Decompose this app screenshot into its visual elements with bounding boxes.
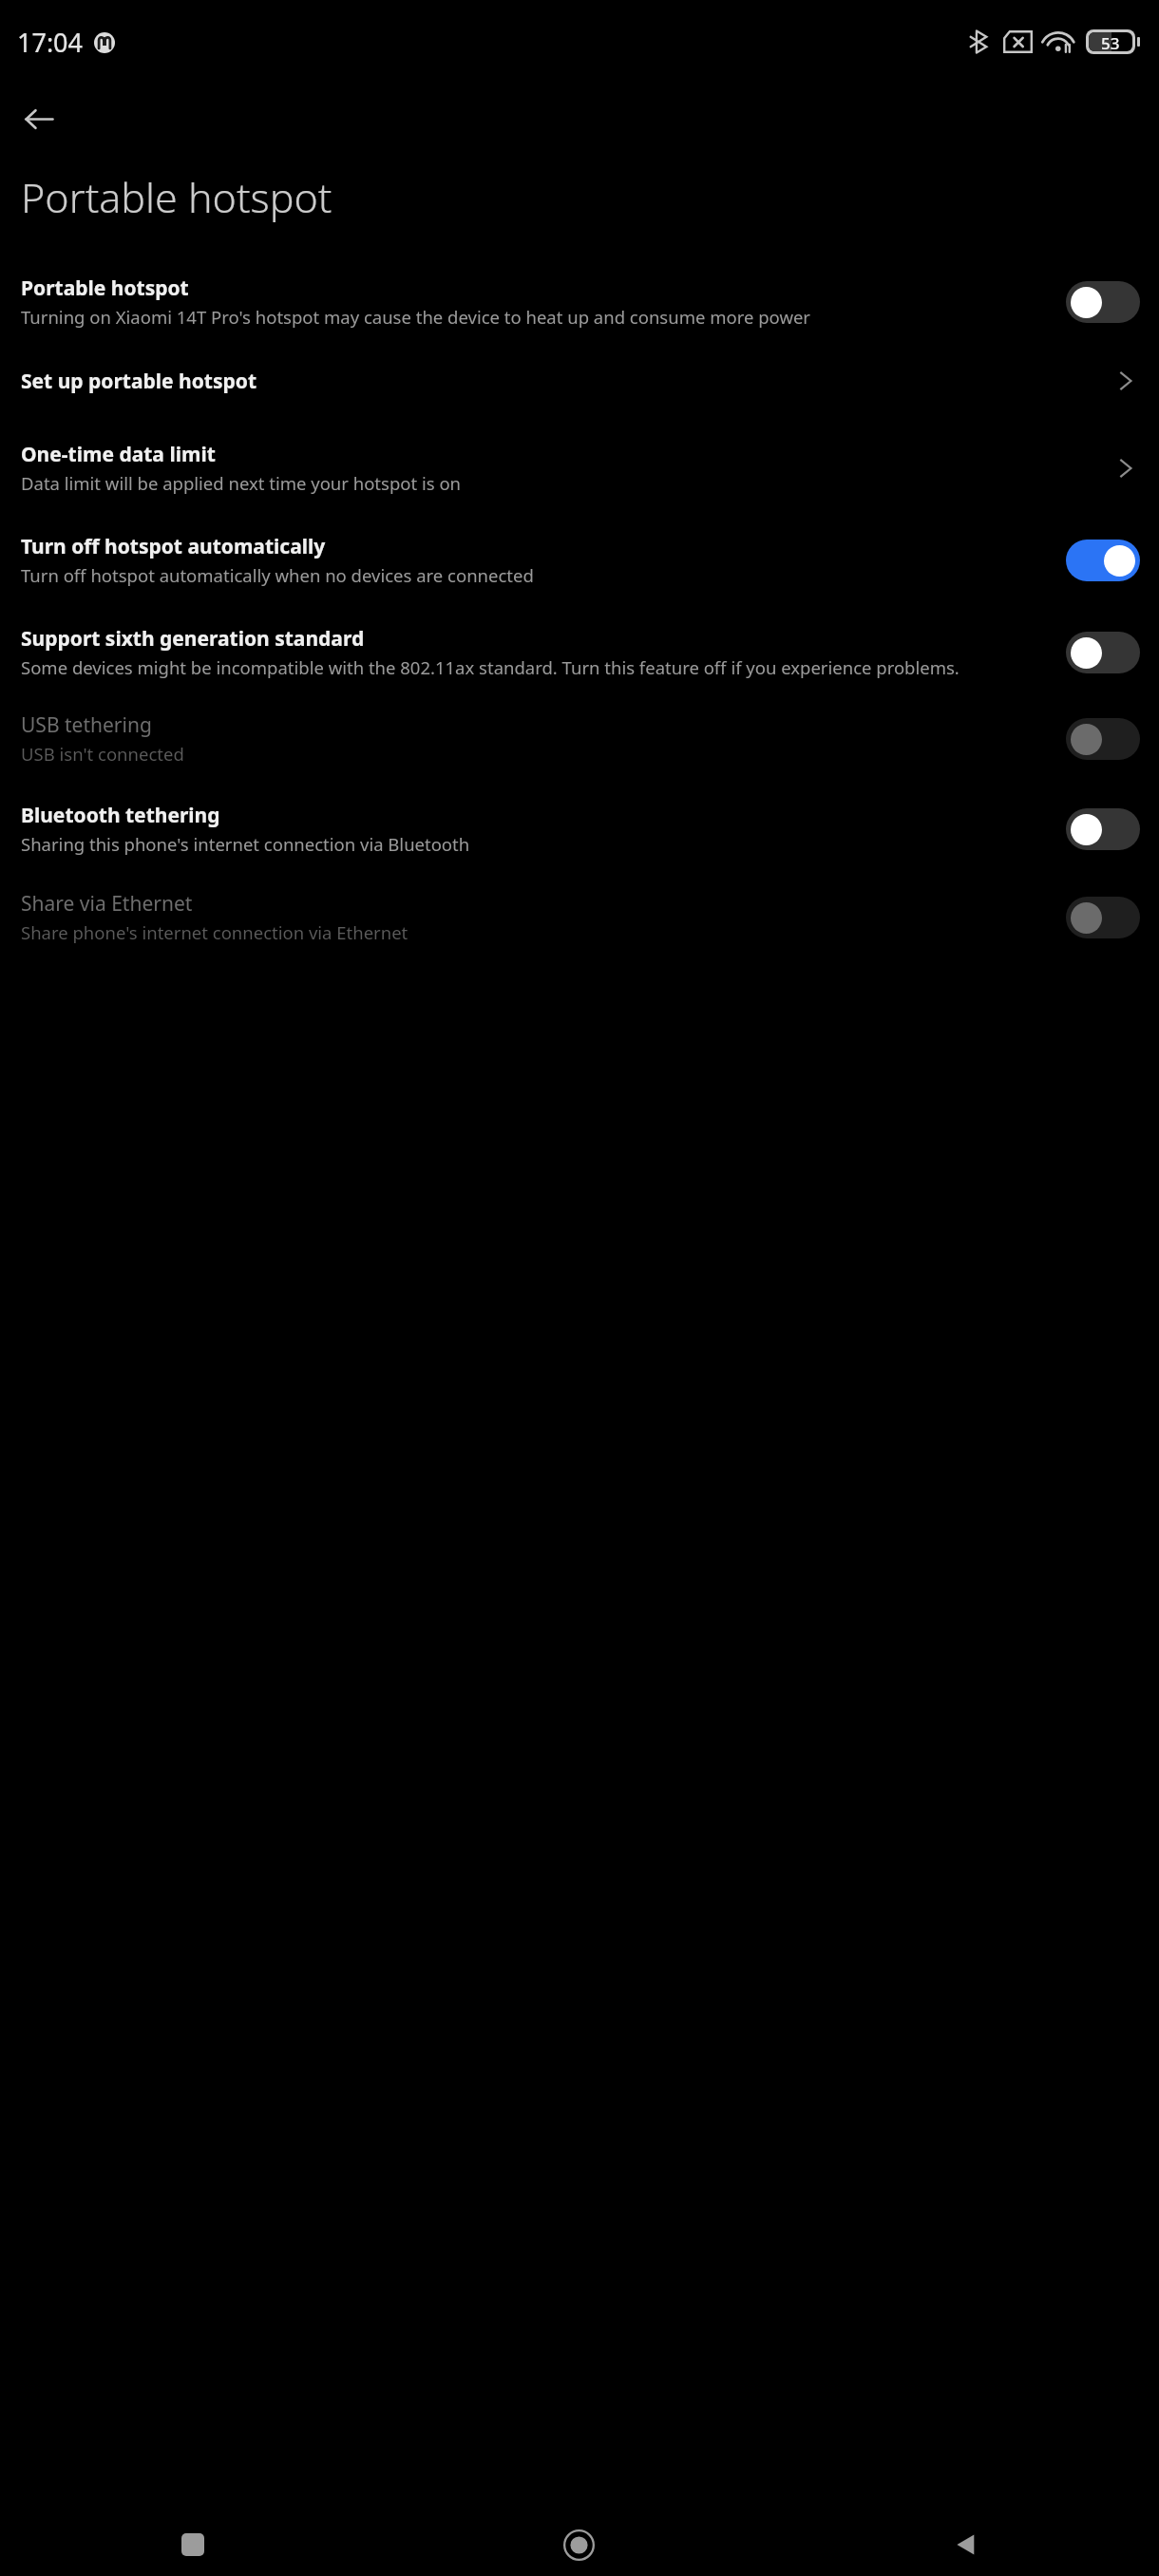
staticText: Turn off hotspot automatically [21,533,326,560]
staticText: Share phone's internet connection via Et… [21,920,408,944]
staticText: Set up portable hotspot [21,368,257,395]
button[interactable]: Turn off hotspot automatically [0,514,1159,606]
button[interactable]: Home [386,2513,772,2576]
button[interactable]: Set up portable hotspot [0,342,1159,422]
other: Open [1111,367,1140,395]
button[interactable]: Back [9,89,68,148]
button[interactable]: Bluetooth tethering [0,785,1159,873]
button[interactable]: Back [772,2513,1159,2576]
staticText: Some devices might be incompatible with … [21,655,959,679]
button[interactable]: USB tethering [1066,718,1140,760]
button[interactable]: Portable hotspot [1066,281,1140,323]
staticText: USB isn't connected [21,742,184,766]
button[interactable]: Recents [0,2513,386,2576]
staticText: Portable hotspot [21,169,332,225]
staticText: Sharing this phone's internet connection… [21,832,470,856]
other: Open [1111,454,1140,483]
button[interactable]: Support sixth generation standard [0,606,1159,694]
staticText: Share via Ethernet [21,890,193,918]
button[interactable]: Portable hotspot [0,265,1159,342]
button[interactable]: One-time data limit [0,422,1159,514]
button[interactable]: Share via Ethernet [1066,897,1140,938]
staticText: 53 [1101,32,1120,51]
staticText: Turn off hotspot automatically when no d… [21,563,534,587]
button[interactable]: Support sixth generation standard [1066,632,1140,673]
staticText: Bluetooth tethering [21,802,220,829]
staticText: Turning on Xiaomi 14T Pro's hotspot may … [21,305,811,329]
staticText: Data limit will be applied next time you… [21,471,462,495]
button[interactable]: Bluetooth tethering [1066,808,1140,850]
button[interactable]: Share via Ethernet [0,873,1159,961]
staticText: 17:04 [17,25,84,60]
staticText: Portable hotspot [21,275,189,302]
staticText: USB tethering [21,711,152,739]
staticText: Support sixth generation standard [21,625,365,653]
button[interactable]: Turn off hotspot automatically [1066,540,1140,581]
staticText: One-time data limit [21,441,216,468]
button[interactable]: USB tethering [0,694,1159,785]
